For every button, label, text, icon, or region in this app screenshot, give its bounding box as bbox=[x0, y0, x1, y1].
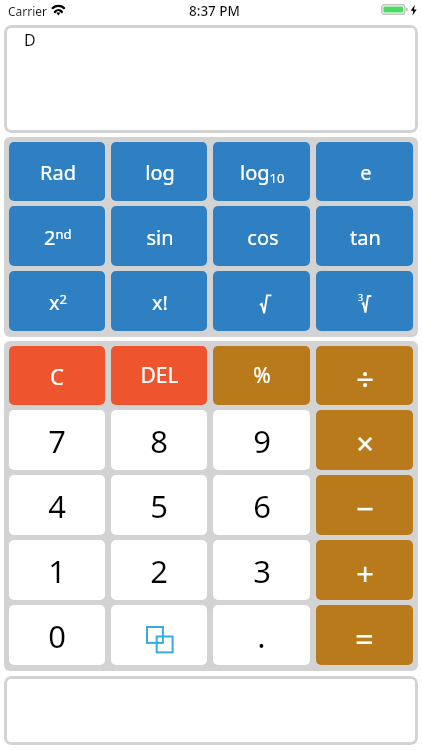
button[interactable]: 6 bbox=[213, 475, 310, 535]
button[interactable]: ÷ bbox=[316, 346, 413, 405]
staticText: D bbox=[24, 29, 36, 51]
button[interactable]: % bbox=[213, 346, 310, 405]
button[interactable]: History bbox=[4, 676, 418, 745]
staticText: 4 bbox=[48, 485, 66, 527]
button[interactable]: 0 bbox=[9, 605, 105, 665]
button[interactable]: cos bbox=[213, 206, 310, 266]
staticText: 1 bbox=[48, 550, 66, 592]
staticText: sin bbox=[146, 224, 174, 251]
button[interactable]: tan bbox=[316, 206, 413, 266]
staticText: Rad bbox=[40, 159, 76, 186]
button[interactable]: log10 bbox=[213, 142, 310, 201]
staticText: Carrier bbox=[8, 3, 48, 19]
button[interactable]: 2nd bbox=[9, 206, 105, 266]
staticText: 0 bbox=[48, 615, 66, 657]
staticText: 3 bbox=[358, 291, 364, 303]
staticText: 5 bbox=[150, 485, 168, 527]
button[interactable]: × bbox=[316, 410, 413, 470]
button[interactable]: 3 bbox=[316, 271, 413, 331]
button[interactable]: = bbox=[316, 605, 413, 665]
staticText: 2 bbox=[150, 550, 168, 592]
button[interactable]: C bbox=[9, 346, 105, 405]
button[interactable]: 3 bbox=[213, 540, 310, 600]
button[interactable]: Rad bbox=[9, 142, 105, 201]
button[interactable]: sin bbox=[111, 206, 207, 266]
button[interactable]: 2 bbox=[111, 540, 207, 600]
staticText: log bbox=[145, 159, 175, 186]
staticText: 2nd bbox=[44, 224, 72, 251]
staticText: 9 bbox=[253, 420, 271, 462]
button[interactable]: e bbox=[316, 142, 413, 201]
staticText: = bbox=[355, 616, 374, 661]
staticText: × bbox=[356, 422, 374, 464]
staticText: x! bbox=[152, 289, 168, 316]
button[interactable]: x! bbox=[111, 271, 207, 331]
staticText: C bbox=[50, 361, 64, 391]
staticText: 8:37 PM bbox=[189, 2, 240, 20]
button[interactable]: 7 bbox=[9, 410, 105, 470]
button[interactable]: x2 bbox=[9, 271, 105, 331]
staticText: . bbox=[257, 615, 266, 657]
button[interactable]: log bbox=[111, 142, 207, 201]
button[interactable]: + bbox=[316, 540, 413, 600]
staticText: 6 bbox=[253, 485, 271, 527]
button[interactable]: Expression display bbox=[4, 25, 418, 133]
staticText: 7 bbox=[48, 420, 66, 462]
staticText: 3 bbox=[253, 550, 271, 592]
staticText: x2 bbox=[49, 289, 68, 316]
staticText: cos bbox=[247, 224, 279, 251]
button[interactable]: − bbox=[316, 475, 413, 535]
button[interactable]: . bbox=[213, 605, 310, 665]
staticText: % bbox=[253, 361, 271, 390]
staticText: DEL bbox=[140, 361, 179, 390]
staticText: ÷ bbox=[356, 358, 374, 400]
button[interactable]: Copy result bbox=[111, 605, 207, 665]
button[interactable]: 9 bbox=[213, 410, 310, 470]
button[interactable] bbox=[213, 271, 310, 331]
button[interactable]: 8 bbox=[111, 410, 207, 470]
button[interactable]: 4 bbox=[9, 475, 105, 535]
staticText: tan bbox=[350, 224, 381, 251]
button[interactable]: 1 bbox=[9, 540, 105, 600]
button[interactable]: 5 bbox=[111, 475, 207, 535]
staticText: 8 bbox=[150, 420, 168, 462]
staticText: + bbox=[356, 552, 374, 594]
staticText: log10 bbox=[240, 159, 285, 187]
button[interactable]: DEL bbox=[111, 346, 207, 405]
staticText: − bbox=[356, 487, 374, 529]
staticText: e bbox=[360, 159, 372, 186]
